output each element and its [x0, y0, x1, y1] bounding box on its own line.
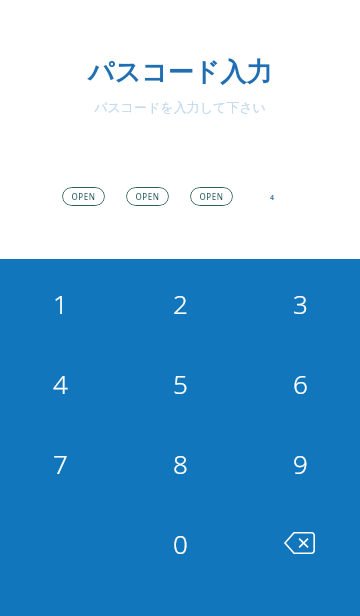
staticText: 0	[173, 526, 188, 561]
button[interactable]: 8	[120, 423, 240, 503]
staticText: パスコード入力	[0, 56, 360, 89]
staticText: OPEN	[71, 191, 96, 202]
staticText: 1	[53, 286, 68, 321]
button[interactable]: 4	[0, 343, 120, 423]
staticText: 7	[53, 446, 68, 481]
staticText: 3	[293, 286, 308, 321]
staticText: 6	[293, 366, 308, 401]
staticText: 9	[293, 446, 308, 481]
staticText: 4	[270, 193, 275, 201]
staticText: OPEN	[199, 191, 224, 202]
button[interactable]: 9	[240, 423, 360, 503]
button[interactable]: OPEN	[62, 187, 105, 206]
staticText: 5	[173, 366, 188, 401]
button[interactable]: 0	[120, 503, 240, 583]
button[interactable]: 5	[120, 343, 240, 423]
button[interactable]: OPEN	[126, 187, 169, 206]
button[interactable]: 3	[240, 263, 360, 343]
button[interactable]: 7	[0, 423, 120, 503]
staticText: 8	[173, 446, 188, 481]
button[interactable]: 1	[0, 263, 120, 343]
staticText: 4	[53, 366, 68, 401]
button[interactable]: OPEN	[190, 187, 233, 206]
button[interactable]: 6	[240, 343, 360, 423]
button[interactable]: 2	[120, 263, 240, 343]
staticText: 2	[173, 286, 188, 321]
staticText: パスコードを入力して下さい	[0, 99, 360, 115]
staticText: OPEN	[135, 191, 160, 202]
button[interactable]: Backspace	[240, 503, 360, 583]
